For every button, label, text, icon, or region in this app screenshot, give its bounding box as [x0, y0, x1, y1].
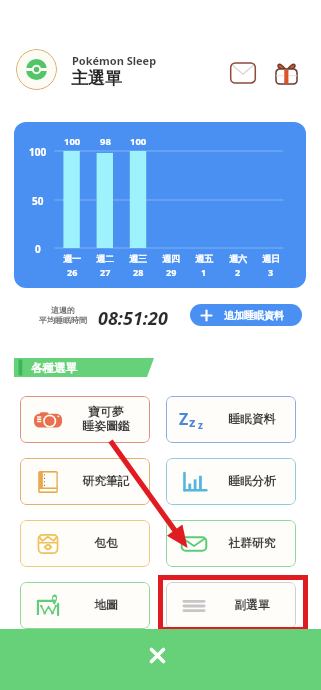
- staticText: 100: [29, 145, 47, 159]
- staticText: Z: [179, 408, 189, 430]
- staticText: 主選單: [71, 68, 122, 89]
- staticText: 週二: [96, 253, 114, 264]
- button[interactable]: 寶可夢 睡姿圖鑑: [20, 396, 150, 443]
- staticText: 週日: [262, 253, 280, 264]
- staticText: 週六: [229, 253, 247, 264]
- staticText: 0: [35, 242, 41, 256]
- button[interactable]: 包包: [20, 520, 150, 567]
- staticText: 寶可夢 睡姿圖鑑: [82, 405, 130, 434]
- button[interactable]: Z: [166, 396, 296, 443]
- staticText: 週五: [195, 253, 213, 264]
- button[interactable]: Mail: [229, 59, 257, 87]
- staticText: 週四: [162, 253, 180, 264]
- staticText: 平均睡眠時間: [39, 315, 87, 325]
- button[interactable]: Gifts: [272, 58, 300, 86]
- staticText: z: [198, 418, 203, 432]
- staticText: 100: [64, 135, 81, 148]
- staticText: 27: [100, 266, 111, 278]
- staticText: 29: [166, 266, 177, 278]
- button[interactable]: Close: [0, 629, 321, 690]
- staticText: 週三: [129, 253, 147, 264]
- staticText: 睡眠資料: [228, 412, 276, 427]
- staticText: 98: [100, 135, 111, 148]
- staticText: 1: [201, 266, 207, 278]
- button[interactable]: 研究筆記: [20, 458, 150, 505]
- staticText: 各種選單: [31, 361, 77, 375]
- staticText: z: [189, 413, 196, 431]
- staticText: 地圖: [94, 598, 118, 613]
- staticText: 社群研究: [228, 536, 276, 551]
- staticText: 3: [268, 266, 274, 278]
- staticText: 包包: [94, 536, 118, 551]
- staticText: 28: [133, 266, 144, 278]
- staticText: 這週的: [51, 305, 75, 315]
- staticText: 睡眠分析: [228, 474, 276, 489]
- button[interactable]: 睡眠分析: [166, 458, 296, 505]
- button[interactable]: 追加睡眠資料: [190, 304, 302, 326]
- button[interactable]: 地圖: [20, 582, 150, 629]
- staticText: 26: [67, 266, 78, 278]
- staticText: 100: [130, 135, 147, 148]
- staticText: Pokémon Sleep: [72, 53, 157, 68]
- button[interactable]: 副選單: [166, 582, 296, 629]
- staticText: 副選單: [234, 598, 270, 613]
- staticText: 追加睡眠資料: [224, 309, 284, 322]
- staticText: 50: [32, 194, 44, 208]
- staticText: 08:51:20: [98, 306, 168, 331]
- staticText: 2: [235, 266, 241, 278]
- staticText: 研究筆記: [82, 474, 130, 489]
- button[interactable]: 社群研究: [166, 520, 296, 567]
- staticText: 週一: [63, 253, 81, 264]
